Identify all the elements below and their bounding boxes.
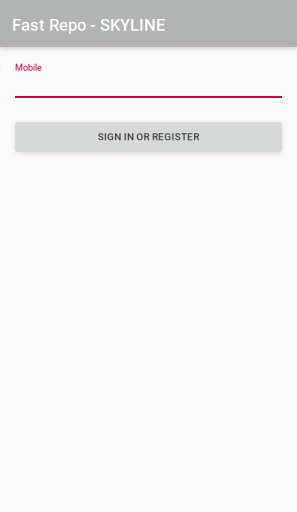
button[interactable]: Mobile bbox=[15, 47, 282, 98]
button[interactable]: SIGN IN OR REGISTER bbox=[15, 122, 282, 152]
staticText: SIGN IN OR REGISTER bbox=[98, 131, 199, 143]
staticText: Mobile bbox=[15, 62, 42, 73]
staticText: Fast Repo - SKYLINE bbox=[12, 15, 165, 35]
